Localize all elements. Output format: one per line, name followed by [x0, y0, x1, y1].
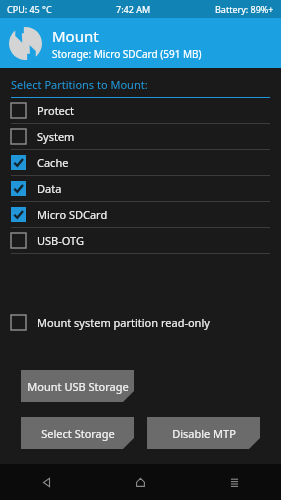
button[interactable]: Home [93, 464, 187, 500]
button[interactable]: Select Storage [21, 417, 134, 449]
staticText: System [37, 129, 75, 144]
staticText: Micro SDCard [37, 207, 108, 222]
staticText: Cache [37, 155, 69, 170]
staticText: CPU: 45 °C [7, 3, 52, 15]
staticText: Mount [52, 26, 99, 46]
button[interactable]: Protect [0, 98, 281, 124]
staticText: Select Partitions to Mount: [11, 77, 148, 92]
button[interactable]: Cache [0, 150, 281, 176]
staticText: Battery: 89%+ [215, 3, 274, 15]
button[interactable]: Recent apps [187, 464, 281, 500]
staticText: Storage: Micro SDCard (591 MB) [52, 47, 202, 61]
button[interactable]: System [0, 124, 281, 150]
staticText: Disable MTP [172, 426, 236, 441]
button[interactable]: Mount USB Storage [21, 370, 134, 402]
staticText: Mount system partition read-only [37, 315, 210, 330]
button[interactable]: Data [0, 176, 281, 202]
staticText: Protect [37, 103, 75, 118]
staticText: Select Storage [41, 426, 115, 441]
staticText: 7:42 AM [116, 3, 151, 15]
button[interactable]: USB-OTG [0, 228, 281, 254]
button[interactable]: Mount system partition read-only [0, 311, 281, 333]
button[interactable]: Back [0, 464, 93, 500]
button[interactable]: Disable MTP [147, 417, 260, 449]
button[interactable]: Micro SDCard [0, 202, 281, 228]
staticText: Data [37, 181, 62, 196]
staticText: USB-OTG [37, 233, 84, 248]
staticText: Mount USB Storage [27, 379, 129, 394]
